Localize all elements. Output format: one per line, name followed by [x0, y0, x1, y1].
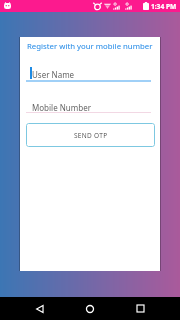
- button[interactable]: Home: [77, 297, 103, 320]
- button[interactable]: Mobile Number: [26, 101, 151, 113]
- staticText: User Name: [32, 69, 75, 80]
- staticText: SEND OTP: [74, 131, 108, 140]
- staticText: 1:34 PM: [151, 2, 177, 11]
- button[interactable]: User Name: [26, 67, 151, 82]
- staticText: Mobile Number: [32, 102, 91, 113]
- button[interactable]: Recent apps: [127, 297, 153, 320]
- button[interactable]: SEND OTP: [26, 123, 155, 147]
- button[interactable]: Back: [27, 297, 53, 320]
- staticText: Register with your mobile number: [27, 41, 153, 52]
